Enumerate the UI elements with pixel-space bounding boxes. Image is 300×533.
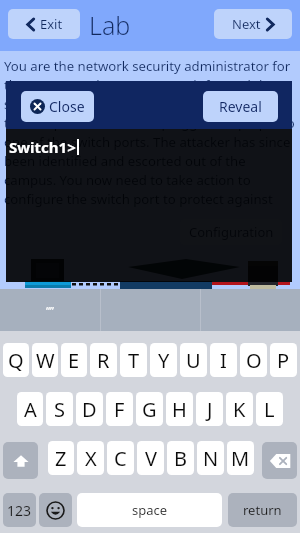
button[interactable]: Close xyxy=(21,91,94,122)
staticText: N xyxy=(203,445,219,472)
button[interactable]: E xyxy=(61,343,87,377)
button[interactable]: 123 xyxy=(3,493,36,527)
button[interactable]: Shift xyxy=(3,442,38,479)
button[interactable]: C xyxy=(107,441,134,475)
button[interactable]: V xyxy=(137,441,164,475)
staticText: L xyxy=(264,396,275,423)
staticText: Lab xyxy=(89,8,131,42)
button[interactable]: L xyxy=(256,392,283,426)
button[interactable]: Z xyxy=(48,441,74,475)
staticText: Q xyxy=(8,347,24,374)
button[interactable]: Next xyxy=(214,9,292,39)
staticText: V xyxy=(145,445,157,472)
button[interactable]: “” xyxy=(0,289,100,331)
staticText: Next xyxy=(232,15,261,33)
staticText: space xyxy=(132,501,168,519)
button[interactable]: Y xyxy=(150,343,177,377)
staticText: Configuration xyxy=(189,223,274,241)
button[interactable]: S xyxy=(46,392,73,426)
button[interactable]: N xyxy=(197,441,224,475)
button[interactable]: T xyxy=(120,343,147,377)
staticText: C xyxy=(114,445,127,472)
button[interactable]: Emoji xyxy=(39,493,72,527)
button[interactable]: F xyxy=(106,392,133,426)
button[interactable]: return xyxy=(228,493,297,527)
staticText: W xyxy=(36,347,55,374)
staticText: Exit xyxy=(40,15,63,33)
staticText: H xyxy=(172,396,187,423)
button[interactable]: B xyxy=(167,441,194,475)
staticText: You are the network security administrat… xyxy=(4,57,296,207)
staticText: I xyxy=(220,347,227,374)
button[interactable]: J xyxy=(196,392,223,426)
staticText: Switch1> xyxy=(9,137,76,157)
staticText: U xyxy=(186,347,201,374)
button[interactable]: W xyxy=(32,343,58,377)
staticText: D xyxy=(82,396,97,423)
staticText: return xyxy=(243,501,282,519)
staticText: K xyxy=(233,396,246,423)
button[interactable]: P xyxy=(270,343,297,377)
staticText: P xyxy=(277,347,290,374)
staticText: T xyxy=(128,347,140,374)
button[interactable]: space xyxy=(77,493,222,527)
staticText: “” xyxy=(46,303,54,318)
button[interactable]: Q xyxy=(3,343,29,377)
button[interactable]: K xyxy=(226,392,253,426)
button[interactable]: H xyxy=(166,392,193,426)
staticText: F xyxy=(114,396,125,423)
button[interactable]: A xyxy=(17,392,43,426)
button[interactable]: M xyxy=(227,441,254,475)
staticText: B xyxy=(174,445,187,472)
staticText: R xyxy=(97,347,110,374)
button[interactable]: G xyxy=(136,392,163,426)
staticText: G xyxy=(142,396,157,423)
staticText: X xyxy=(85,445,97,472)
staticText: E xyxy=(68,347,80,374)
staticText: Reveal xyxy=(219,97,262,116)
button[interactable]: I xyxy=(210,343,237,377)
staticText: S xyxy=(54,396,65,423)
staticText: A xyxy=(24,396,37,423)
staticText: 123 xyxy=(7,501,32,520)
button[interactable]: R xyxy=(90,343,117,377)
button[interactable]: Reveal xyxy=(203,91,278,122)
staticText: O xyxy=(246,347,262,374)
staticText: M xyxy=(231,445,250,472)
staticText: Close xyxy=(49,97,85,116)
button[interactable]: U xyxy=(180,343,207,377)
button[interactable]: D xyxy=(76,392,103,426)
button[interactable]: O xyxy=(240,343,267,377)
staticText: J xyxy=(207,396,213,423)
button[interactable]: Backspace xyxy=(262,442,297,479)
button[interactable]: Exit xyxy=(8,9,80,39)
staticText: Z xyxy=(55,445,67,472)
staticText: Y xyxy=(158,347,170,374)
button[interactable]: X xyxy=(77,441,104,475)
